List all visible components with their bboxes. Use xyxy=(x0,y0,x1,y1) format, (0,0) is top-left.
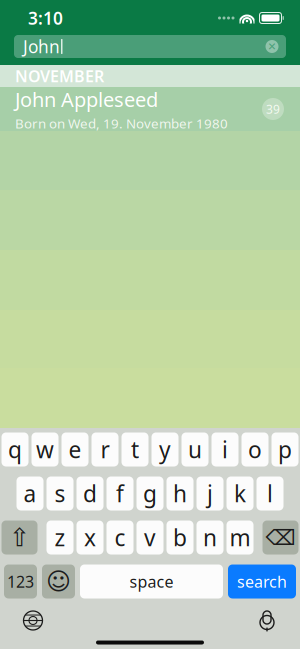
button[interactable]: e xyxy=(61,432,88,466)
staticText: x xyxy=(84,522,96,552)
button[interactable]: z xyxy=(46,520,73,554)
button[interactable]: Shift xyxy=(1,520,37,554)
staticText: y xyxy=(159,434,171,464)
button[interactable]: Delete xyxy=(262,520,298,554)
staticText: q xyxy=(8,434,22,464)
staticText: h xyxy=(173,478,187,508)
staticText: g xyxy=(143,478,157,508)
button[interactable]: j xyxy=(196,476,223,510)
staticText: m xyxy=(229,522,250,552)
button[interactable]: o xyxy=(241,432,268,466)
button[interactable]: space xyxy=(80,564,223,598)
button[interactable]: s xyxy=(46,476,73,510)
button[interactable]: m xyxy=(226,520,253,554)
button[interactable]: t xyxy=(121,432,148,466)
button[interactable]: a xyxy=(16,476,43,510)
button[interactable]: Next keyboard xyxy=(22,609,44,631)
button[interactable]: u xyxy=(181,432,208,466)
button[interactable]: Clear text xyxy=(260,34,284,58)
button[interactable]: p xyxy=(271,432,298,466)
staticText: s xyxy=(54,478,65,508)
staticText: space xyxy=(129,571,173,592)
staticText: o xyxy=(248,434,262,464)
staticText: a xyxy=(23,478,36,508)
staticText: z xyxy=(54,522,65,552)
button[interactable]: v xyxy=(136,520,163,554)
button[interactable]: y xyxy=(151,432,178,466)
button[interactable]: Dictate xyxy=(256,608,278,632)
staticText: u xyxy=(188,434,202,464)
button[interactable]: l xyxy=(256,476,283,510)
staticText: b xyxy=(173,522,187,552)
staticText: search xyxy=(237,571,287,592)
staticText: t xyxy=(131,434,139,464)
staticText: John Appleseed xyxy=(15,86,158,112)
staticText: ☺ xyxy=(46,568,71,595)
button[interactable]: q xyxy=(1,432,28,466)
staticText: i xyxy=(222,434,228,464)
button[interactable]: c xyxy=(106,520,133,554)
staticText: j xyxy=(207,478,213,508)
button[interactable]: g xyxy=(136,476,163,510)
button[interactable]: b xyxy=(166,520,193,554)
button[interactable]: k xyxy=(226,476,253,510)
staticText: NOVEMBER xyxy=(15,65,104,87)
button[interactable]: 123 xyxy=(4,564,37,598)
button[interactable]: x xyxy=(76,520,103,554)
staticText: ✕ xyxy=(267,40,276,52)
staticText: r xyxy=(100,434,109,464)
staticText: f xyxy=(116,478,124,508)
staticText: v xyxy=(144,522,156,552)
button[interactable]: r xyxy=(91,432,118,466)
staticText: p xyxy=(278,434,292,464)
button[interactable]: John Appleseed xyxy=(0,87,300,131)
staticText: ⌫ xyxy=(265,525,295,550)
button[interactable]: w xyxy=(31,432,58,466)
staticText: d xyxy=(83,478,97,508)
staticText: n xyxy=(203,522,217,552)
staticText: 123 xyxy=(7,571,34,592)
button[interactable]: f xyxy=(106,476,133,510)
button[interactable]: i xyxy=(211,432,238,466)
button[interactable]: n xyxy=(196,520,223,554)
button[interactable]: Emoji xyxy=(42,564,75,598)
staticText: 3:10 xyxy=(28,6,63,29)
staticText: k xyxy=(234,478,246,508)
staticText: c xyxy=(114,522,125,552)
staticText: Born on Wed, 19. November 1980 xyxy=(15,114,228,132)
button[interactable]: h xyxy=(166,476,193,510)
staticText: e xyxy=(68,434,81,464)
staticText: 39 xyxy=(266,101,280,117)
staticText: John xyxy=(23,35,60,58)
staticText: w xyxy=(36,434,54,464)
button[interactable]: d xyxy=(76,476,103,510)
staticText: l xyxy=(267,478,273,508)
staticText: ⇧ xyxy=(9,523,30,552)
button[interactable]: search xyxy=(228,564,296,598)
